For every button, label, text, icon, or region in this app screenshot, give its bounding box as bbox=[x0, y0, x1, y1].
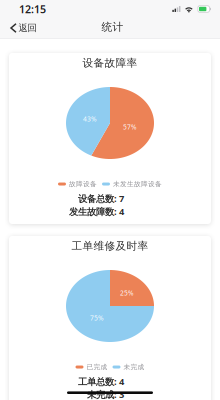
staticText: 未完成 bbox=[123, 363, 144, 371]
staticText: 设备故障率 bbox=[82, 56, 137, 69]
staticText: 12:15 bbox=[19, 2, 46, 16]
staticText: 发生故障数: 4 bbox=[69, 205, 124, 218]
staticText: 43% bbox=[83, 115, 97, 123]
staticText: 57% bbox=[123, 123, 137, 131]
staticText: 25% bbox=[120, 289, 134, 297]
button[interactable]: 返回 bbox=[0, 18, 44, 38]
staticText: 75% bbox=[90, 314, 104, 322]
staticText: 返回 bbox=[18, 22, 36, 34]
staticText: 未完成: 3 bbox=[87, 388, 124, 400]
staticText: 未发生故障设备 bbox=[113, 180, 162, 188]
staticText: 工单总数: 4 bbox=[78, 375, 124, 388]
staticText: 工单维修及时率 bbox=[71, 239, 148, 252]
staticText: 故障设备 bbox=[69, 180, 97, 188]
staticText: 统计 bbox=[101, 20, 123, 33]
staticText: 设备总数: 7 bbox=[78, 192, 124, 205]
staticText: 已完成 bbox=[86, 363, 107, 371]
